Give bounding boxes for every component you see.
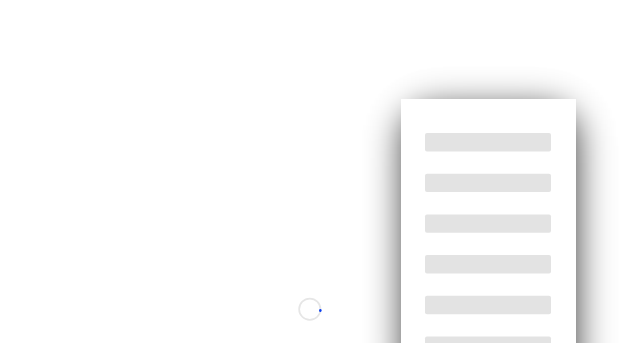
button[interactable]: Loading list item [401, 203, 576, 243]
button[interactable]: Loading list item [401, 123, 576, 163]
button[interactable]: Loading list item [401, 283, 576, 323]
button[interactable]: Loading list item [401, 163, 576, 203]
button[interactable]: Loading list item [401, 243, 576, 283]
button[interactable]: Loading list item [401, 323, 576, 343]
other: Loading [298, 297, 322, 321]
